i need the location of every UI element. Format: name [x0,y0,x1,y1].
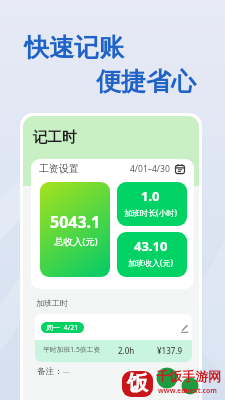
staticText: 2.0h [118,345,135,356]
button[interactable]: 5043.1 [40,182,110,277]
staticText: 记工时 [33,128,77,146]
staticText: 备注： [37,366,63,377]
staticText: www.eduext.com [158,386,217,395]
button[interactable]: 1.0 [117,182,187,226]
staticText: 周一 4/21 [46,323,79,333]
staticText: --- [63,367,70,377]
button[interactable]: 周一 4/21 [35,314,192,362]
staticText: 饭 [127,371,148,396]
staticText: 加班工时 [36,298,68,308]
staticText: 便捷省心 [96,66,196,97]
staticText: 5043.1 [50,211,101,233]
staticText: 加班时长(小时) [124,207,177,218]
staticText: 快速记账 [24,32,124,63]
staticText: 1.0 [141,187,160,205]
staticText: 平时加班1.5倍工资 [43,345,101,354]
button[interactable]: Edit [177,321,191,335]
staticText: 工资设置 [39,162,79,175]
staticText: 千饭手游网 [156,368,221,384]
staticText: 4/01–4/30 [130,163,170,175]
staticText: 加班收入(元) [128,257,173,268]
button[interactable]: Select date range [130,162,185,176]
staticText: 总收入(元) [54,235,98,248]
staticText: 43.10 [134,237,168,255]
button[interactable]: 43.10 [117,232,187,277]
staticText: ¥137.9 [157,345,183,356]
